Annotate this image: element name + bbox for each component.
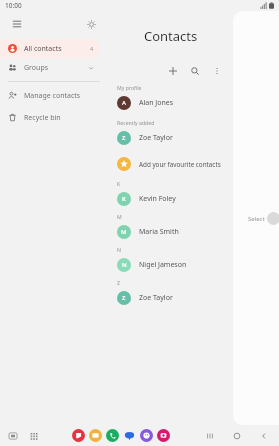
button[interactable]: Add your favourite contacts: [108, 154, 233, 174]
staticText: All contacts: [24, 44, 62, 54]
staticText: Select: [248, 215, 265, 223]
button[interactable]: A: [108, 93, 233, 113]
staticText: 10:00: [5, 1, 22, 10]
button[interactable]: All contacts: [0, 39, 100, 58]
button[interactable]: Recents: [6, 429, 19, 442]
button[interactable]: App: [106, 429, 119, 442]
button[interactable]: App: [157, 429, 170, 442]
staticText: M: [121, 228, 127, 236]
staticText: Z: [122, 134, 126, 142]
button[interactable]: Messages: [123, 429, 136, 442]
staticText: N: [117, 246, 121, 253]
button[interactable]: Z: [108, 128, 233, 148]
staticText: Kevin Foley: [139, 194, 176, 204]
staticText: Zoe Taylor: [139, 133, 173, 143]
button[interactable]: Manage contacts: [0, 86, 108, 105]
button[interactable]: Recent apps: [202, 428, 217, 443]
button[interactable]: Z: [108, 288, 233, 308]
staticText: Contacts: [144, 27, 198, 45]
button[interactable]: Add contact: [165, 63, 181, 79]
staticText: Zoe Taylor: [139, 293, 173, 303]
staticText: K: [117, 180, 121, 187]
staticText: Z: [117, 279, 120, 286]
staticText: M: [117, 213, 122, 220]
staticText: 4: [90, 45, 94, 52]
staticText: Recently added: [117, 119, 155, 126]
button[interactable]: M: [108, 222, 233, 242]
button[interactable]: Search: [187, 63, 203, 79]
staticText: My profile: [117, 84, 142, 91]
button[interactable]: Groups: [0, 58, 108, 77]
button[interactable]: Open navigation menu: [8, 15, 26, 33]
staticText: A: [122, 99, 126, 107]
button[interactable]: Back: [256, 428, 271, 443]
staticText: Recycle bin: [24, 113, 61, 123]
button[interactable]: App: [72, 429, 85, 442]
button[interactable]: K: [108, 189, 233, 209]
button[interactable]: App: [140, 429, 153, 442]
button[interactable]: Home: [229, 428, 244, 443]
staticText: Manage contacts: [24, 91, 81, 101]
staticText: N: [122, 261, 127, 269]
button[interactable]: N: [108, 255, 233, 275]
staticText: Groups: [24, 63, 49, 73]
staticText: K: [122, 195, 126, 203]
staticText: Add your favourite contacts: [139, 160, 221, 169]
staticText: Maria Smith: [139, 227, 179, 237]
staticText: Nigel Jameson: [139, 260, 187, 270]
button[interactable]: Recycle bin: [0, 108, 108, 127]
button[interactable]: All apps: [27, 429, 40, 442]
button[interactable]: App: [89, 429, 102, 442]
button[interactable]: More options: [209, 63, 225, 79]
staticText: Z: [122, 294, 126, 302]
button[interactable]: Settings: [82, 15, 100, 33]
staticText: Alan Jones: [139, 98, 174, 108]
